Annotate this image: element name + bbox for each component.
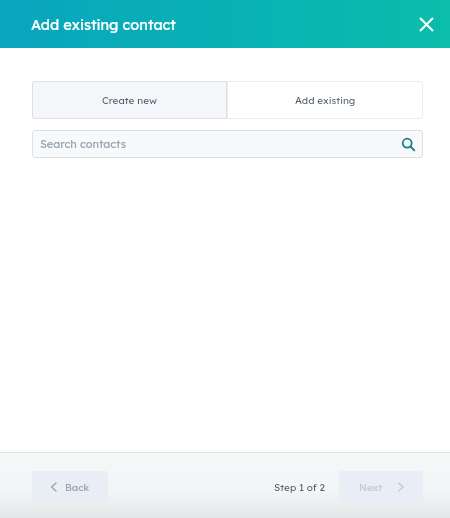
other: Search — [402, 138, 415, 151]
button[interactable]: Create new — [32, 81, 227, 119]
staticText: Back — [65, 481, 90, 494]
staticText: Next — [359, 481, 383, 494]
button[interactable]: Next — [339, 471, 423, 503]
button[interactable]: Back — [32, 471, 108, 503]
staticText: Add existing contact — [31, 15, 176, 33]
button[interactable]: Close dialog — [409, 7, 443, 41]
staticText: Step 1 of 2 — [274, 481, 325, 494]
staticText: Search contacts — [40, 137, 126, 151]
staticText: Create new — [102, 94, 157, 107]
staticText: Add existing — [295, 94, 356, 107]
button[interactable]: Search contacts — [32, 130, 423, 158]
button[interactable]: Add existing — [227, 81, 423, 119]
